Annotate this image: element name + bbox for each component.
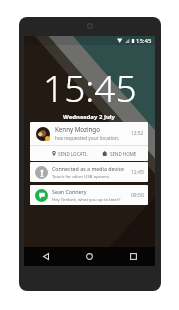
- button[interactable]: Sean Connery: [30, 185, 148, 205]
- button[interactable]: Kenny Mozingo: [30, 122, 148, 161]
- staticText: SEND HOME: [110, 151, 137, 157]
- button[interactable]: Back: [24, 247, 67, 266]
- button[interactable]: SEND HOME: [102, 146, 148, 161]
- button[interactable]: Connected as a media device: [30, 162, 148, 182]
- staticText: has requested your location.: [55, 135, 120, 142]
- staticText: Kenny Mozingo: [55, 125, 100, 133]
- staticText: 15:45: [43, 62, 137, 112]
- staticText: 12:45: [131, 169, 144, 176]
- staticText: SEND LOCATI...: [58, 151, 89, 157]
- staticText: Touch for other USB options.: [52, 173, 111, 179]
- button[interactable]: Recents: [111, 247, 155, 266]
- staticText: 09:50: [131, 192, 144, 199]
- staticText: Connected as a media device: [52, 165, 125, 172]
- staticText: 12:52: [131, 130, 144, 137]
- button[interactable]: SEND LOCATI...: [52, 146, 89, 161]
- staticText: 15:45: [136, 37, 152, 45]
- staticText: Sean Connery: [52, 188, 87, 195]
- staticText: Wednesday 2 July: [63, 113, 116, 121]
- button[interactable]: Home: [67, 247, 111, 266]
- staticText: Hey Timbek, what you up to later?: [52, 196, 121, 202]
